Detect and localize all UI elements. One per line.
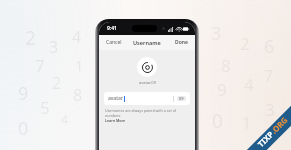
staticText: 9 <box>217 78 227 101</box>
staticText: 0 <box>18 116 29 141</box>
staticText: 0 <box>212 108 223 134</box>
staticText: Done <box>175 39 188 46</box>
staticText: 1 <box>75 55 84 75</box>
staticText: .ORG <box>268 114 290 136</box>
staticText: 8 <box>73 84 83 106</box>
staticText: 8 <box>221 54 231 77</box>
staticText: 4 <box>244 73 254 96</box>
staticText: 4 <box>72 26 82 48</box>
staticText: 2 <box>52 72 62 94</box>
staticText: TIXP <box>255 128 276 149</box>
staticText: Learn More <box>105 118 126 123</box>
staticText: Usernames are always paired with a set o… <box>105 108 189 118</box>
button[interactable]: Learn More <box>105 118 126 123</box>
staticText: 7 <box>35 54 45 77</box>
button[interactable]: Done <box>168 36 195 49</box>
staticText: avatar <box>108 95 123 102</box>
staticText: 5 <box>40 96 50 119</box>
staticText: 3 <box>49 36 59 58</box>
staticText: 4 <box>61 111 68 127</box>
button[interactable]: avatar <box>104 92 190 105</box>
button[interactable]: Cancel <box>99 36 129 49</box>
staticText: 09 <box>179 96 184 101</box>
staticText: 9:41 <box>107 25 117 32</box>
staticText: Username <box>133 39 161 46</box>
staticText: 3 <box>211 21 222 46</box>
staticText: 2 <box>240 32 250 55</box>
staticText: 9 <box>18 81 29 106</box>
staticText: 3 <box>265 98 275 121</box>
staticText: Cancel <box>106 39 122 46</box>
staticText: avatar.09 <box>139 80 156 85</box>
staticText: 7 <box>264 65 274 87</box>
button[interactable]: Suggested number <box>177 96 186 101</box>
staticText: 2 <box>25 25 36 51</box>
staticText: 6 <box>264 34 275 59</box>
button[interactable]: Account avatar <box>137 57 157 77</box>
